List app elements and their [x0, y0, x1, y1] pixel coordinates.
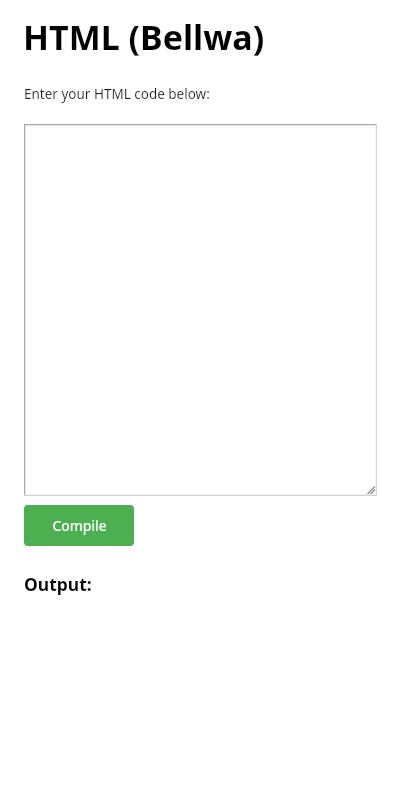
staticText: HTML (Bellwa) — [23, 14, 265, 60]
button[interactable]: HTML code input — [24, 124, 377, 496]
button[interactable]: Compile — [24, 505, 134, 546]
staticText: Enter your HTML code below: — [24, 85, 210, 103]
staticText: Compile — [52, 516, 107, 535]
staticText: Output: — [24, 572, 92, 596]
